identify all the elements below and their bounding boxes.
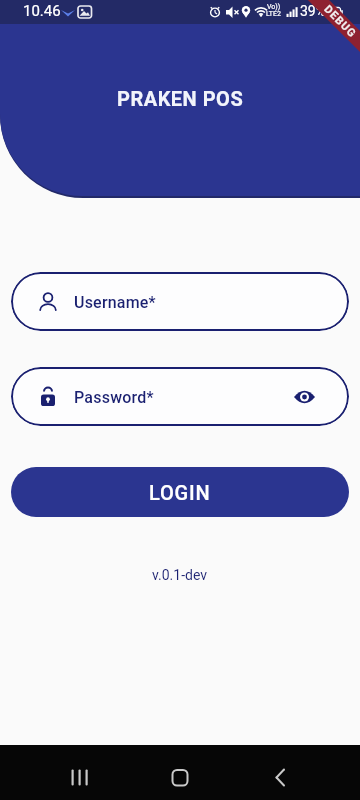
staticText: DEBUG <box>321 3 359 41</box>
staticText: 10.46 <box>23 2 61 20</box>
button[interactable] <box>55 751 105 795</box>
button[interactable]: Password* <box>11 367 349 426</box>
staticText: LTE2 <box>266 10 281 18</box>
staticText: Vo)) <box>267 3 281 11</box>
staticText: v.0.1-dev <box>152 567 208 583</box>
staticText: 39% <box>300 3 326 19</box>
staticText: LOGIN <box>149 481 211 504</box>
button[interactable] <box>255 751 305 795</box>
button[interactable] <box>155 751 205 795</box>
button[interactable]: LOGIN <box>11 467 349 517</box>
staticText: Password* <box>74 388 154 407</box>
button[interactable]: Username* <box>11 272 349 331</box>
button[interactable] <box>292 385 316 409</box>
staticText: Username* <box>74 293 156 312</box>
staticText: PRAKEN POS <box>117 87 244 110</box>
